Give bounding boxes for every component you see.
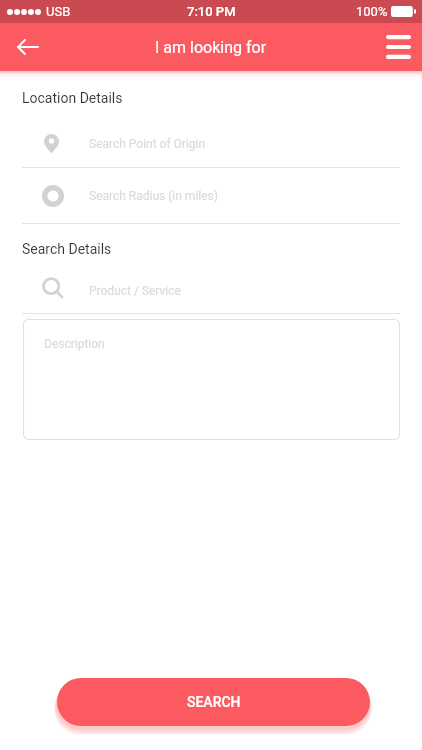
staticText: Product / Service xyxy=(89,284,181,298)
button[interactable]: Menu xyxy=(376,25,420,69)
button[interactable]: Product / Service xyxy=(22,269,400,313)
button[interactable]: Back xyxy=(6,25,50,69)
staticText: Search Radius (in miles) xyxy=(89,189,218,203)
button[interactable]: Search Point of Origin xyxy=(22,121,400,167)
staticText: Search Details xyxy=(22,241,112,257)
button[interactable]: SEARCH xyxy=(57,678,370,726)
staticText: 7:10 PM xyxy=(187,4,236,19)
staticText: I am looking for xyxy=(155,38,267,57)
button[interactable]: Description xyxy=(23,319,400,440)
staticText: Location Details xyxy=(22,90,123,106)
staticText: USB xyxy=(46,4,71,19)
staticText: 100% xyxy=(356,4,388,19)
staticText: Search Point of Origin xyxy=(89,137,206,151)
staticText: SEARCH xyxy=(187,694,241,710)
staticText: Description xyxy=(44,337,105,351)
button[interactable]: Search Radius (in miles) xyxy=(22,168,400,223)
